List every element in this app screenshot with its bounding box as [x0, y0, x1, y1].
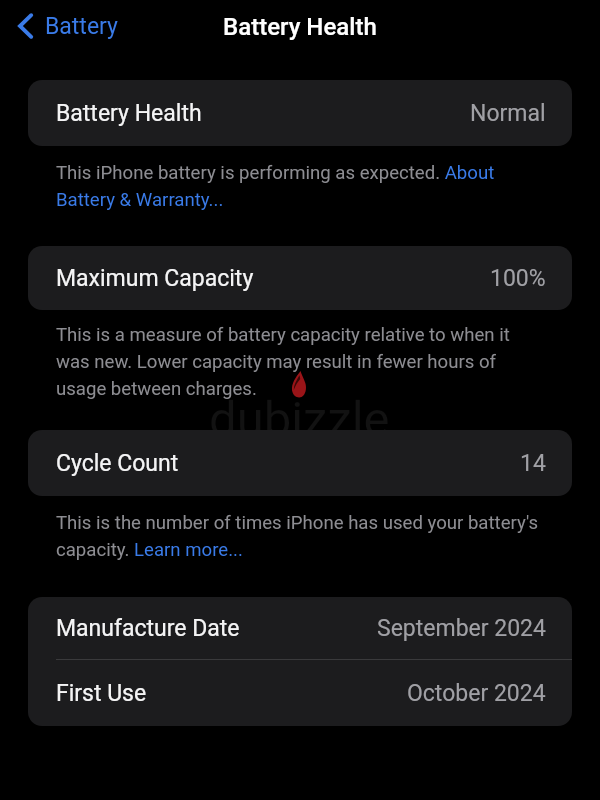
staticText: 100% [490, 265, 546, 292]
button[interactable]: Battery Health [28, 80, 572, 146]
button[interactable]: Maximum Capacity [28, 246, 572, 310]
staticText: October 2024 [407, 680, 546, 707]
staticText: Cycle Count [56, 450, 179, 477]
staticText: This iPhone battery is performing as exp… [56, 157, 544, 211]
button[interactable]: Cycle Count [28, 430, 572, 496]
staticText: Battery [45, 13, 118, 40]
staticText: Battery Health [223, 13, 377, 41]
staticText: dubizzle [209, 391, 390, 448]
staticText: Normal [470, 100, 546, 127]
staticText: 14 [520, 450, 546, 477]
staticText: First Use [56, 680, 147, 707]
staticText: Manufacture Date [56, 615, 240, 642]
staticText: This is a measure of battery capacity re… [56, 319, 544, 400]
staticText: Battery Health [56, 100, 202, 127]
button[interactable]: Back to Battery [14, 8, 118, 44]
button[interactable]: Manufacture Date [28, 597, 572, 659]
staticText: September 2024 [377, 615, 546, 642]
button[interactable]: First Use [28, 660, 572, 726]
staticText: Maximum Capacity [56, 265, 254, 292]
staticText: This is the number of times iPhone has u… [56, 507, 544, 561]
